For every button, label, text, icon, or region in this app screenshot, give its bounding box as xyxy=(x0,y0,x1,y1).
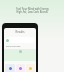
staticText: High-Fat, Low-Carb Boosts xyxy=(16,10,48,13)
staticText: Fuel Your Mind with Energy xyxy=(16,7,49,10)
button[interactable]: Search xyxy=(5,37,35,43)
button[interactable]: Featured xyxy=(4,49,36,61)
button[interactable]: Steps xyxy=(26,64,35,72)
button[interactable]: Sleep xyxy=(16,64,25,72)
staticText: Results xyxy=(4,30,36,34)
button[interactable]: Water xyxy=(5,64,15,72)
staticText: Recommended xyxy=(6,45,21,48)
